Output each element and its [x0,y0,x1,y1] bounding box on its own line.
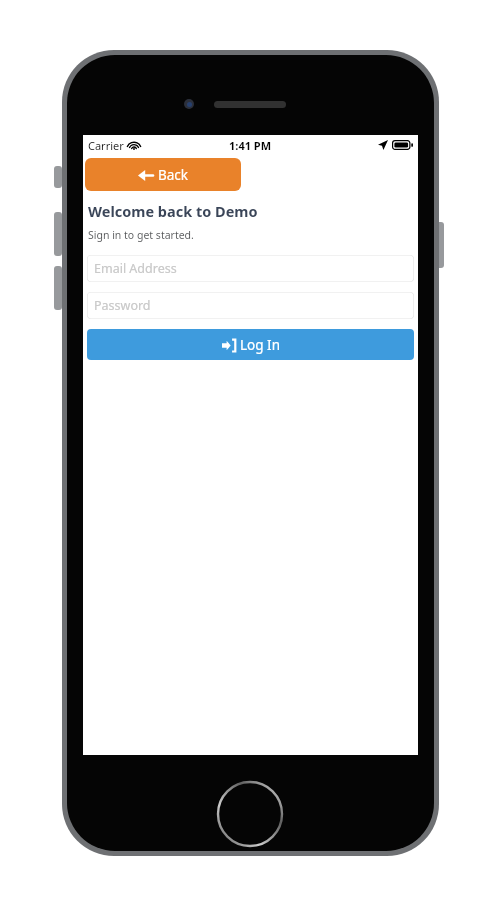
button[interactable]: Password [87,292,414,319]
staticText: Log In [240,336,280,354]
button[interactable]: Email Address [87,255,414,282]
button[interactable]: Back [85,158,241,191]
staticText: Email Address [94,260,177,277]
staticText: Welcome back to Demo [88,201,258,221]
staticText: Back [158,166,189,184]
staticText: Password [94,297,151,314]
button[interactable]: Log In [87,329,414,360]
staticText: Sign in to get started. [88,228,194,242]
staticText: 1:41 PM [229,138,272,153]
staticText: Carrier [88,138,124,153]
